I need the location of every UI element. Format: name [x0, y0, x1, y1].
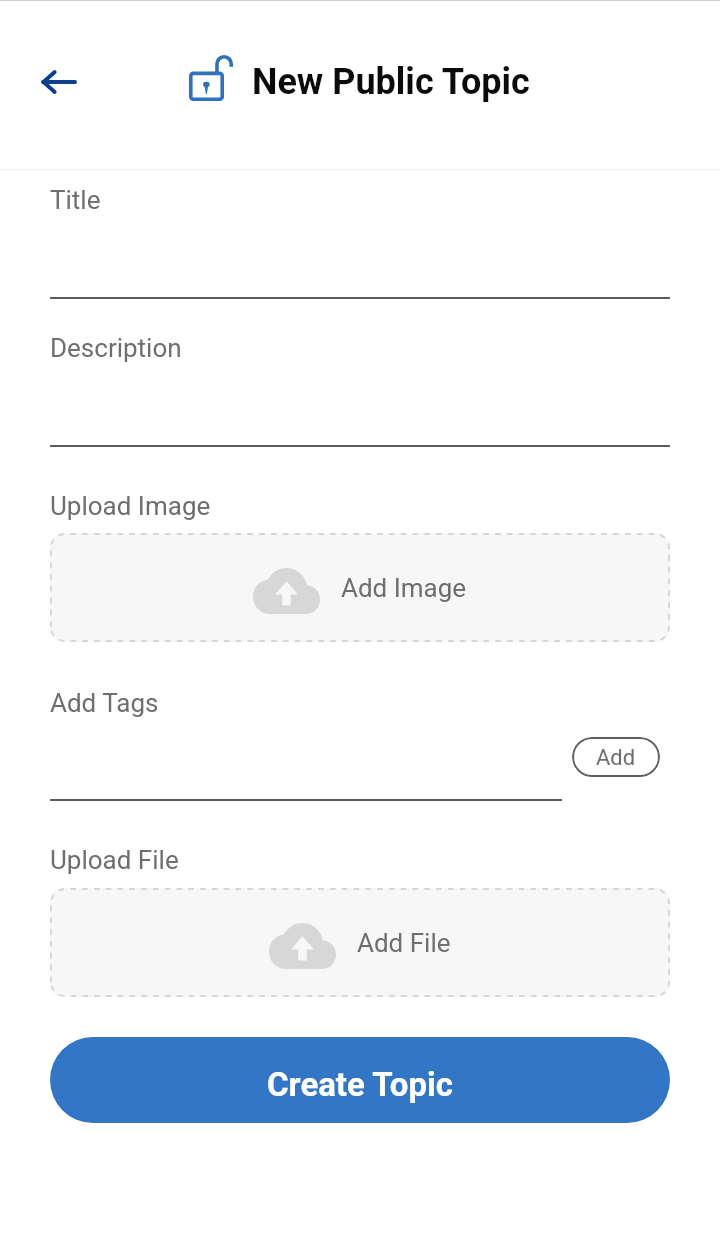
- staticText: Create Topic: [267, 1065, 453, 1104]
- button[interactable]: Back: [17, 44, 100, 127]
- staticText: Add: [596, 745, 636, 771]
- staticText: Title: [50, 185, 101, 215]
- staticText: New Public Topic: [252, 61, 530, 103]
- staticText: Description: [50, 333, 182, 363]
- button[interactable]: Create Topic: [50, 1037, 670, 1123]
- staticText: Add Tags: [50, 688, 159, 718]
- button[interactable]: Add File: [50, 888, 670, 997]
- staticText: Add Image: [341, 573, 467, 603]
- button[interactable]: Add Image: [50, 533, 670, 642]
- staticText: Upload Image: [50, 491, 211, 521]
- staticText: Add File: [357, 928, 451, 958]
- staticText: Upload File: [50, 845, 179, 875]
- button[interactable]: Add: [572, 737, 660, 777]
